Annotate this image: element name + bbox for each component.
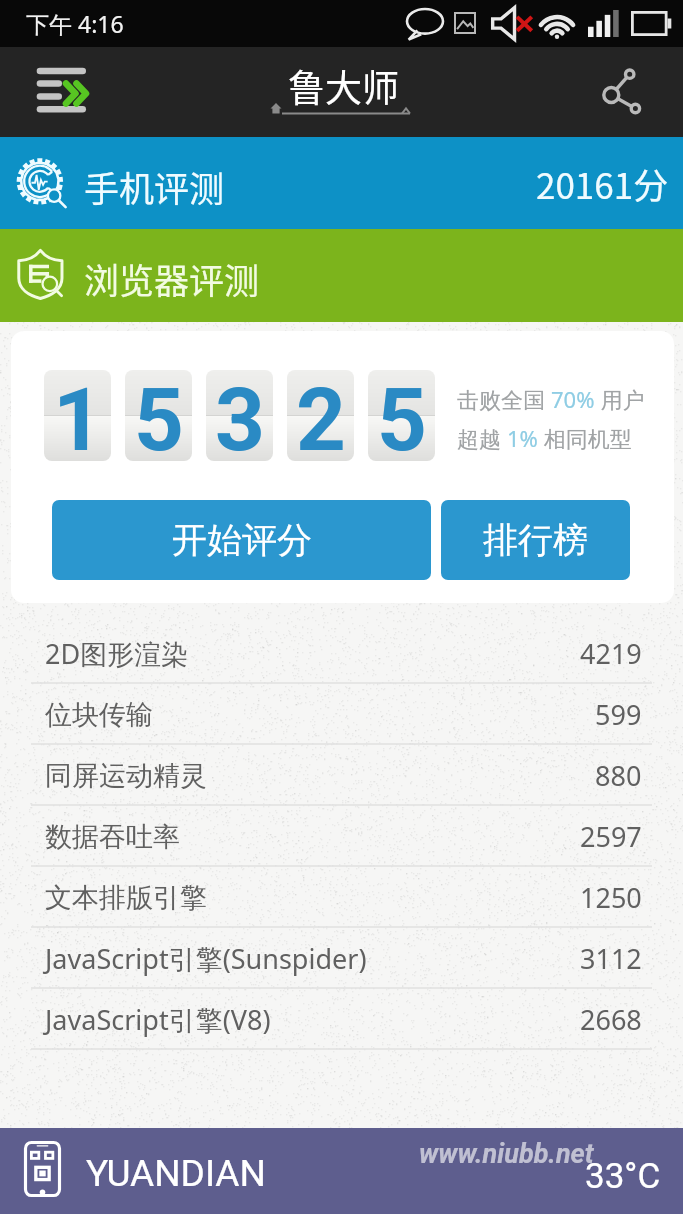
staticText: 5 [377,370,427,460]
staticText: 20161分 [536,158,669,209]
staticText: 3 [215,370,265,460]
staticText: 2668 [580,1001,642,1038]
staticText: 用户 [595,384,645,414]
staticText: 2597 [580,818,642,855]
button[interactable]: 同屏运动精灵 [0,745,683,806]
button[interactable]: Share [596,67,646,117]
staticText: 文本排版引擎 [45,881,207,915]
button[interactable]: 浏览器评测 [0,229,683,322]
staticText: 2 [296,370,346,460]
staticText: 开始评分 [172,518,312,562]
staticText: 1 [53,370,103,460]
button[interactable]: 2D图形渲染 [0,623,683,684]
staticText: 浏览器评测 [84,253,260,304]
button[interactable]: JavaScript引擎(Sunspider) [0,928,683,989]
button[interactable]: Menu [30,64,92,120]
staticText: 击败全国 [457,384,551,414]
staticText: YUANDIAN [86,1152,266,1195]
staticText: 相同机型 [538,423,632,453]
staticText: 鲁大师 [288,59,399,113]
button[interactable]: 数据吞吐率 [0,806,683,867]
staticText: 33°C [585,1156,661,1197]
staticText: 2D图形渲染 [45,635,189,672]
staticText: 位块传输 [45,698,153,732]
staticText: 排行榜 [483,518,588,562]
staticText: JavaScript引擎(V8) [45,1001,271,1038]
staticText: 5 [134,370,184,460]
staticText: JavaScript引擎(Sunspider) [45,940,367,977]
staticText: 4219 [580,635,642,672]
button[interactable]: 开始评分 [52,500,431,580]
staticText: 手机评测 [84,161,225,212]
button[interactable]: JavaScript引擎(V8) [0,989,683,1050]
staticText: 1% [507,423,538,453]
staticText: 下午 4:16 [26,8,124,39]
staticText: 同屏运动精灵 [45,759,207,793]
staticText: 1250 [580,879,642,916]
staticText: 880 [595,757,642,794]
staticText: 70% [551,384,595,414]
staticText: 599 [595,696,642,733]
staticText: 超越 [457,423,507,453]
button[interactable]: 手机评测 [0,137,683,229]
button[interactable]: 位块传输 [0,684,683,745]
staticText: 3112 [580,940,642,977]
button[interactable]: YUANDIAN [0,1128,683,1214]
button[interactable]: 文本排版引擎 [0,867,683,928]
button[interactable]: 排行榜 [441,500,630,580]
staticText: 数据吞吐率 [45,820,180,854]
staticText: www.niubb.net [419,1138,594,1170]
